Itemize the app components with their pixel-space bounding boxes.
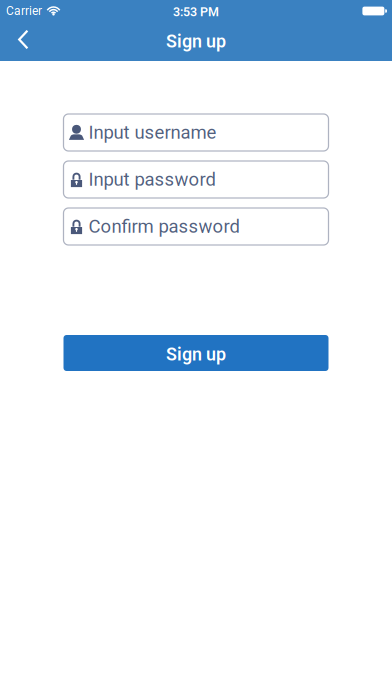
button[interactable]: Back <box>0 24 39 55</box>
staticText: Input username <box>88 122 216 143</box>
staticText: Confirm password <box>88 216 239 237</box>
button[interactable]: Sign up <box>63 335 328 371</box>
staticText: Carrier <box>6 4 42 18</box>
staticText: Sign up <box>166 344 226 365</box>
button[interactable]: Confirm password <box>63 208 328 245</box>
staticText: 3:53 PM <box>173 5 219 19</box>
button[interactable]: Input username <box>63 114 328 151</box>
staticText: Sign up <box>166 31 226 52</box>
button[interactable]: Input password <box>63 161 328 198</box>
staticText: Input password <box>88 169 215 190</box>
